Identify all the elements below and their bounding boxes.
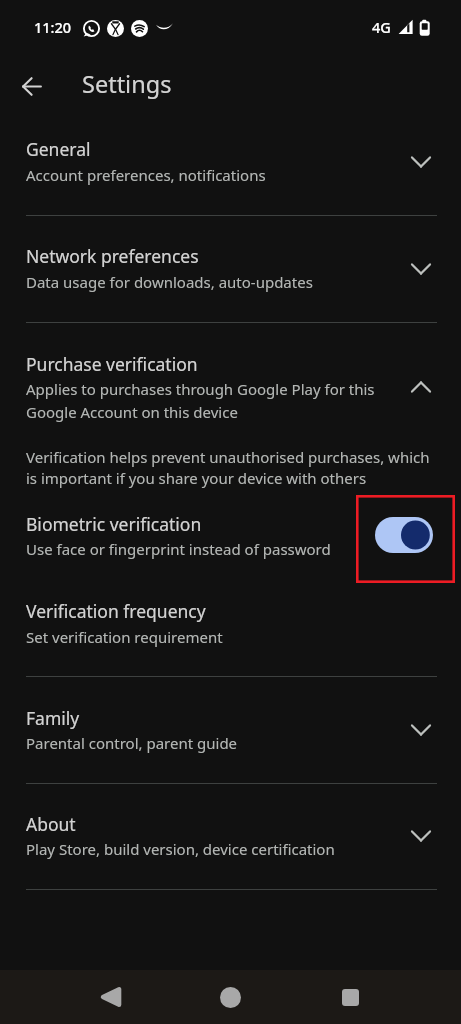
staticText: Purchase verification (26, 352, 198, 376)
button[interactable]: Biometric verification, on (375, 517, 433, 553)
staticText: General (26, 137, 91, 161)
button[interactable]: Purchase verification (0, 323, 461, 430)
staticText: Applies to purchases through Google Play… (26, 379, 375, 399)
button[interactable]: Biometric verification (0, 494, 461, 584)
staticText: is important if you share your device wi… (26, 468, 367, 488)
staticText: About (26, 812, 76, 836)
button[interactable]: About (0, 784, 461, 888)
button[interactable]: Recent apps (324, 971, 376, 1023)
staticText: Biometric verification (26, 512, 202, 536)
staticText: Verification helps prevent unauthorised … (26, 447, 430, 467)
staticText: Google Account on this device (26, 402, 238, 422)
button[interactable]: Verification frequency (0, 585, 461, 675)
staticText: Data usage for downloads, auto-updates (26, 272, 313, 292)
staticText: Play Store, build version, device certif… (26, 839, 335, 859)
button[interactable]: Home (204, 971, 256, 1023)
button[interactable]: Back (84, 971, 136, 1023)
staticText: 4G (372, 17, 391, 37)
button[interactable]: Navigate up (8, 63, 55, 110)
staticText: Account preferences, notifications (26, 165, 266, 185)
staticText: Set verification requirement (26, 627, 223, 647)
staticText: 11:20 (34, 17, 72, 37)
staticText: Family (26, 706, 80, 730)
staticText: Parental control, parent guide (26, 733, 238, 753)
button[interactable]: Family (0, 677, 461, 782)
button[interactable]: Network preferences (0, 216, 461, 321)
staticText: Network preferences (26, 244, 199, 268)
staticText: Settings (82, 68, 172, 100)
staticText: Verification frequency (26, 599, 206, 623)
button[interactable]: General (0, 120, 461, 214)
staticText: Use face or fingerprint instead of passw… (26, 539, 331, 559)
